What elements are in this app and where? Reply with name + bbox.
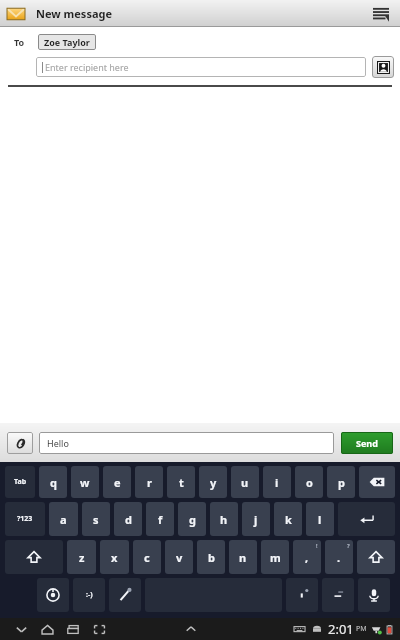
button[interactable]: o bbox=[295, 466, 323, 498]
staticText: Tab bbox=[14, 477, 27, 487]
staticText: i bbox=[275, 475, 279, 490]
staticText: ! bbox=[316, 542, 318, 550]
staticText: q bbox=[50, 475, 57, 490]
button[interactable]: Attach bbox=[7, 432, 33, 454]
button[interactable]: v bbox=[165, 540, 193, 574]
button[interactable]: f bbox=[146, 502, 174, 536]
button[interactable]: s bbox=[82, 502, 110, 536]
button[interactable]: Back bbox=[8, 618, 34, 640]
staticText: m bbox=[270, 550, 281, 565]
staticText: u bbox=[241, 475, 249, 490]
button[interactable]: i bbox=[263, 466, 291, 498]
button[interactable]: w bbox=[71, 466, 99, 498]
button[interactable]: x bbox=[100, 540, 129, 574]
staticText: Send bbox=[356, 437, 378, 449]
staticText: To bbox=[14, 36, 25, 48]
staticText: t bbox=[179, 475, 184, 490]
button[interactable]: m bbox=[261, 540, 289, 574]
button[interactable]: Settings bbox=[37, 578, 69, 612]
button[interactable]: Zoe Taylor bbox=[38, 34, 96, 50]
staticText: h bbox=[220, 512, 228, 527]
button[interactable]: n bbox=[229, 540, 257, 574]
staticText: w bbox=[80, 475, 90, 490]
button[interactable]: Home bbox=[34, 618, 60, 640]
button[interactable]: z bbox=[67, 540, 96, 574]
staticText: j bbox=[254, 512, 258, 527]
button[interactable]: a bbox=[49, 502, 78, 536]
button[interactable]: App icon bbox=[6, 4, 26, 24]
button[interactable]: j bbox=[242, 502, 270, 536]
staticText: a bbox=[60, 512, 67, 527]
staticText: Enter recipient here bbox=[45, 61, 129, 73]
staticText: e bbox=[114, 475, 121, 490]
staticText: r bbox=[147, 475, 152, 490]
staticText: ? bbox=[347, 542, 350, 550]
staticText: f bbox=[158, 512, 163, 527]
button[interactable]: Backspace bbox=[359, 466, 395, 498]
staticText: l bbox=[318, 512, 322, 527]
button[interactable]: k bbox=[274, 502, 302, 536]
staticText: c bbox=[144, 550, 150, 565]
staticText: PM bbox=[356, 624, 367, 634]
button[interactable]: Send bbox=[341, 432, 393, 454]
staticText: y bbox=[210, 475, 217, 490]
button[interactable]: Enter recipient here bbox=[36, 57, 366, 77]
staticText: b bbox=[208, 550, 215, 565]
staticText: v bbox=[176, 550, 183, 565]
staticText: x bbox=[111, 550, 118, 565]
staticText: p bbox=[338, 475, 345, 490]
button[interactable]: ?123 bbox=[5, 502, 45, 536]
button[interactable]: u bbox=[231, 466, 259, 498]
button[interactable]: Tab bbox=[5, 466, 35, 498]
staticText: Hello bbox=[47, 437, 69, 449]
button[interactable]: , bbox=[293, 540, 321, 574]
staticText: z bbox=[79, 550, 85, 565]
button[interactable]: l bbox=[306, 502, 334, 536]
button[interactable]: Shift bbox=[5, 540, 63, 574]
button[interactable]: t bbox=[167, 466, 195, 498]
staticText: 2:01 bbox=[328, 620, 354, 638]
staticText: g bbox=[189, 512, 196, 527]
button[interactable]: More options bbox=[368, 1, 394, 27]
button[interactable]: h bbox=[210, 502, 238, 536]
button[interactable]: b bbox=[197, 540, 225, 574]
button[interactable]: Screenshot bbox=[86, 618, 112, 640]
button[interactable]: Expand bbox=[178, 618, 204, 640]
staticText: s bbox=[93, 512, 99, 527]
staticText: n bbox=[239, 550, 247, 565]
button[interactable]: c bbox=[133, 540, 161, 574]
staticText: d bbox=[125, 512, 132, 527]
button[interactable]: y bbox=[199, 466, 227, 498]
button[interactable]: Quote bbox=[286, 578, 318, 612]
button[interactable]: r bbox=[135, 466, 163, 498]
staticText: o bbox=[306, 475, 313, 490]
staticText: k bbox=[285, 512, 292, 527]
button[interactable]: Handwriting bbox=[109, 578, 141, 612]
staticText: . bbox=[337, 550, 341, 565]
staticText: ?123 bbox=[17, 514, 33, 524]
button[interactable]: g bbox=[178, 502, 206, 536]
button[interactable]: q bbox=[39, 466, 67, 498]
button[interactable]: p bbox=[327, 466, 355, 498]
staticText: New message bbox=[36, 6, 113, 21]
button[interactable]: . bbox=[325, 540, 353, 574]
button[interactable]: e bbox=[103, 466, 131, 498]
staticText: :-) bbox=[86, 590, 93, 600]
button[interactable]: Enter bbox=[338, 502, 395, 536]
button[interactable]: Recents bbox=[60, 618, 86, 640]
button[interactable]: Shift bbox=[357, 540, 395, 574]
button[interactable]: :-) bbox=[73, 578, 105, 612]
button[interactable]: Hello bbox=[39, 432, 334, 454]
button[interactable]: d bbox=[114, 502, 142, 536]
staticText: , bbox=[305, 550, 309, 565]
staticText: Zoe Taylor bbox=[44, 36, 90, 48]
button[interactable]: Dash bbox=[322, 578, 354, 612]
button[interactable]: Choose contact bbox=[372, 56, 394, 78]
button[interactable]: Voice input bbox=[358, 578, 390, 612]
